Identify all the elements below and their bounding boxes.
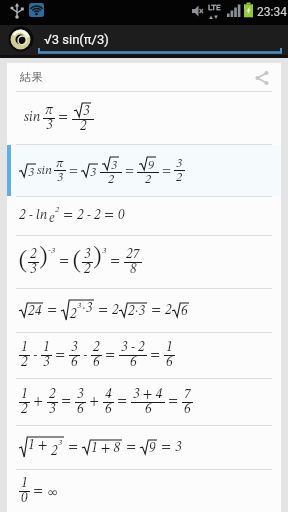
- staticText: sin: [24, 111, 41, 125]
- staticText: sin: [37, 164, 53, 177]
- staticText: (: [19, 250, 28, 274]
- staticText: =: [65, 441, 82, 455]
- staticText: LTE: [208, 3, 221, 12]
- staticText: =: [60, 209, 77, 223]
- staticText: 2: [21, 356, 28, 370]
- staticText: =: [44, 304, 61, 318]
- staticText: 27: [126, 248, 140, 262]
- staticText: 2: [21, 403, 28, 417]
- staticText: =: [95, 304, 112, 318]
- staticText: 1: [166, 341, 173, 355]
- staticText: 3: [83, 105, 90, 119]
- staticText: +: [30, 395, 47, 409]
- staticText: 3: [111, 159, 118, 172]
- staticText: 2 - 2: [77, 209, 101, 223]
- staticText: 2·3: [128, 305, 146, 319]
- staticText: =: [107, 255, 124, 269]
- staticText: 0: [118, 209, 125, 223]
- staticText: ): [39, 246, 48, 270]
- staticText: 6: [166, 356, 173, 370]
- staticText: 23:34: [257, 5, 287, 19]
- staticText: 3 + 4: [133, 388, 163, 402]
- staticText: =: [122, 164, 137, 177]
- staticText: π: [56, 157, 64, 170]
- staticText: 0: [21, 492, 28, 506]
- staticText: 2: [80, 120, 87, 134]
- staticText: 3: [84, 248, 91, 262]
- staticText: 3: [71, 341, 78, 355]
- staticText: =: [148, 304, 165, 318]
- staticText: 3: [102, 246, 107, 255]
- staticText: =: [55, 111, 72, 125]
- staticText: =: [147, 349, 164, 363]
- staticText: 3: [176, 157, 183, 170]
- staticText: 9: [149, 442, 156, 456]
- staticText: 6: [145, 403, 152, 417]
- staticText: 6: [93, 356, 100, 370]
- staticText: 2: [55, 206, 60, 215]
- staticText: 3: [58, 439, 63, 448]
- staticText: 3: [175, 441, 182, 455]
- staticText: =: [159, 164, 174, 177]
- staticText: 3: [43, 356, 50, 370]
- staticText: 1: [21, 477, 28, 491]
- staticText: =: [101, 209, 118, 223]
- staticText: 1: [43, 341, 50, 355]
- staticText: 1: [21, 388, 28, 402]
- staticText: 2: [165, 304, 172, 318]
- staticText: =: [165, 395, 182, 409]
- staticText: ∞: [47, 484, 59, 500]
- staticText: -3: [48, 246, 56, 255]
- staticText: 6: [130, 356, 137, 370]
- staticText: =: [58, 395, 75, 409]
- staticText: 6: [77, 403, 84, 417]
- staticText: =: [66, 164, 81, 177]
- staticText: 2: [30, 248, 37, 262]
- staticText: 2: [176, 171, 183, 184]
- staticText: -: [30, 349, 41, 363]
- staticText: =: [30, 485, 47, 499]
- staticText: 3: [28, 166, 35, 179]
- staticText: ): [93, 246, 102, 270]
- staticText: 1: [21, 341, 28, 355]
- staticText: 1 +: [28, 439, 51, 453]
- staticText: 2: [70, 308, 77, 322]
- staticText: e: [49, 212, 55, 226]
- staticText: 2: [145, 173, 152, 186]
- staticText: 2 - ln: [19, 209, 48, 223]
- staticText: 3 - 2: [121, 341, 145, 355]
- staticText: 9: [148, 159, 155, 172]
- staticText: 6: [71, 356, 78, 370]
- staticText: -: [80, 349, 91, 363]
- staticText: 3: [57, 171, 64, 184]
- staticText: 3: [90, 166, 97, 179]
- staticText: =: [114, 395, 131, 409]
- staticText: 3: [49, 403, 56, 417]
- staticText: 24: [28, 305, 42, 319]
- staticText: +: [86, 395, 103, 409]
- staticText: 7: [184, 388, 191, 402]
- staticText: 3: [30, 263, 37, 277]
- staticText: √3 sin(π/3): [44, 32, 109, 47]
- staticText: =: [123, 441, 140, 455]
- staticText: 6: [105, 403, 112, 417]
- staticText: 2: [108, 173, 115, 186]
- staticText: 2: [51, 445, 58, 459]
- staticText: 1 + 8: [91, 442, 121, 456]
- staticText: =: [102, 349, 119, 363]
- staticText: 3: [77, 388, 84, 402]
- staticText: 2: [84, 263, 91, 277]
- staticText: ·3: [82, 302, 93, 316]
- staticText: =: [56, 255, 73, 269]
- staticText: 6: [181, 305, 188, 319]
- staticText: 6: [184, 403, 191, 417]
- staticText: 3: [77, 302, 82, 311]
- staticText: 2: [112, 304, 119, 318]
- staticText: 結果: [20, 70, 43, 84]
- staticText: 3: [46, 119, 53, 133]
- staticText: (: [73, 250, 82, 274]
- staticText: 2: [93, 341, 100, 355]
- staticText: =: [158, 441, 175, 455]
- staticText: 4: [105, 388, 112, 402]
- staticText: 2: [49, 388, 56, 402]
